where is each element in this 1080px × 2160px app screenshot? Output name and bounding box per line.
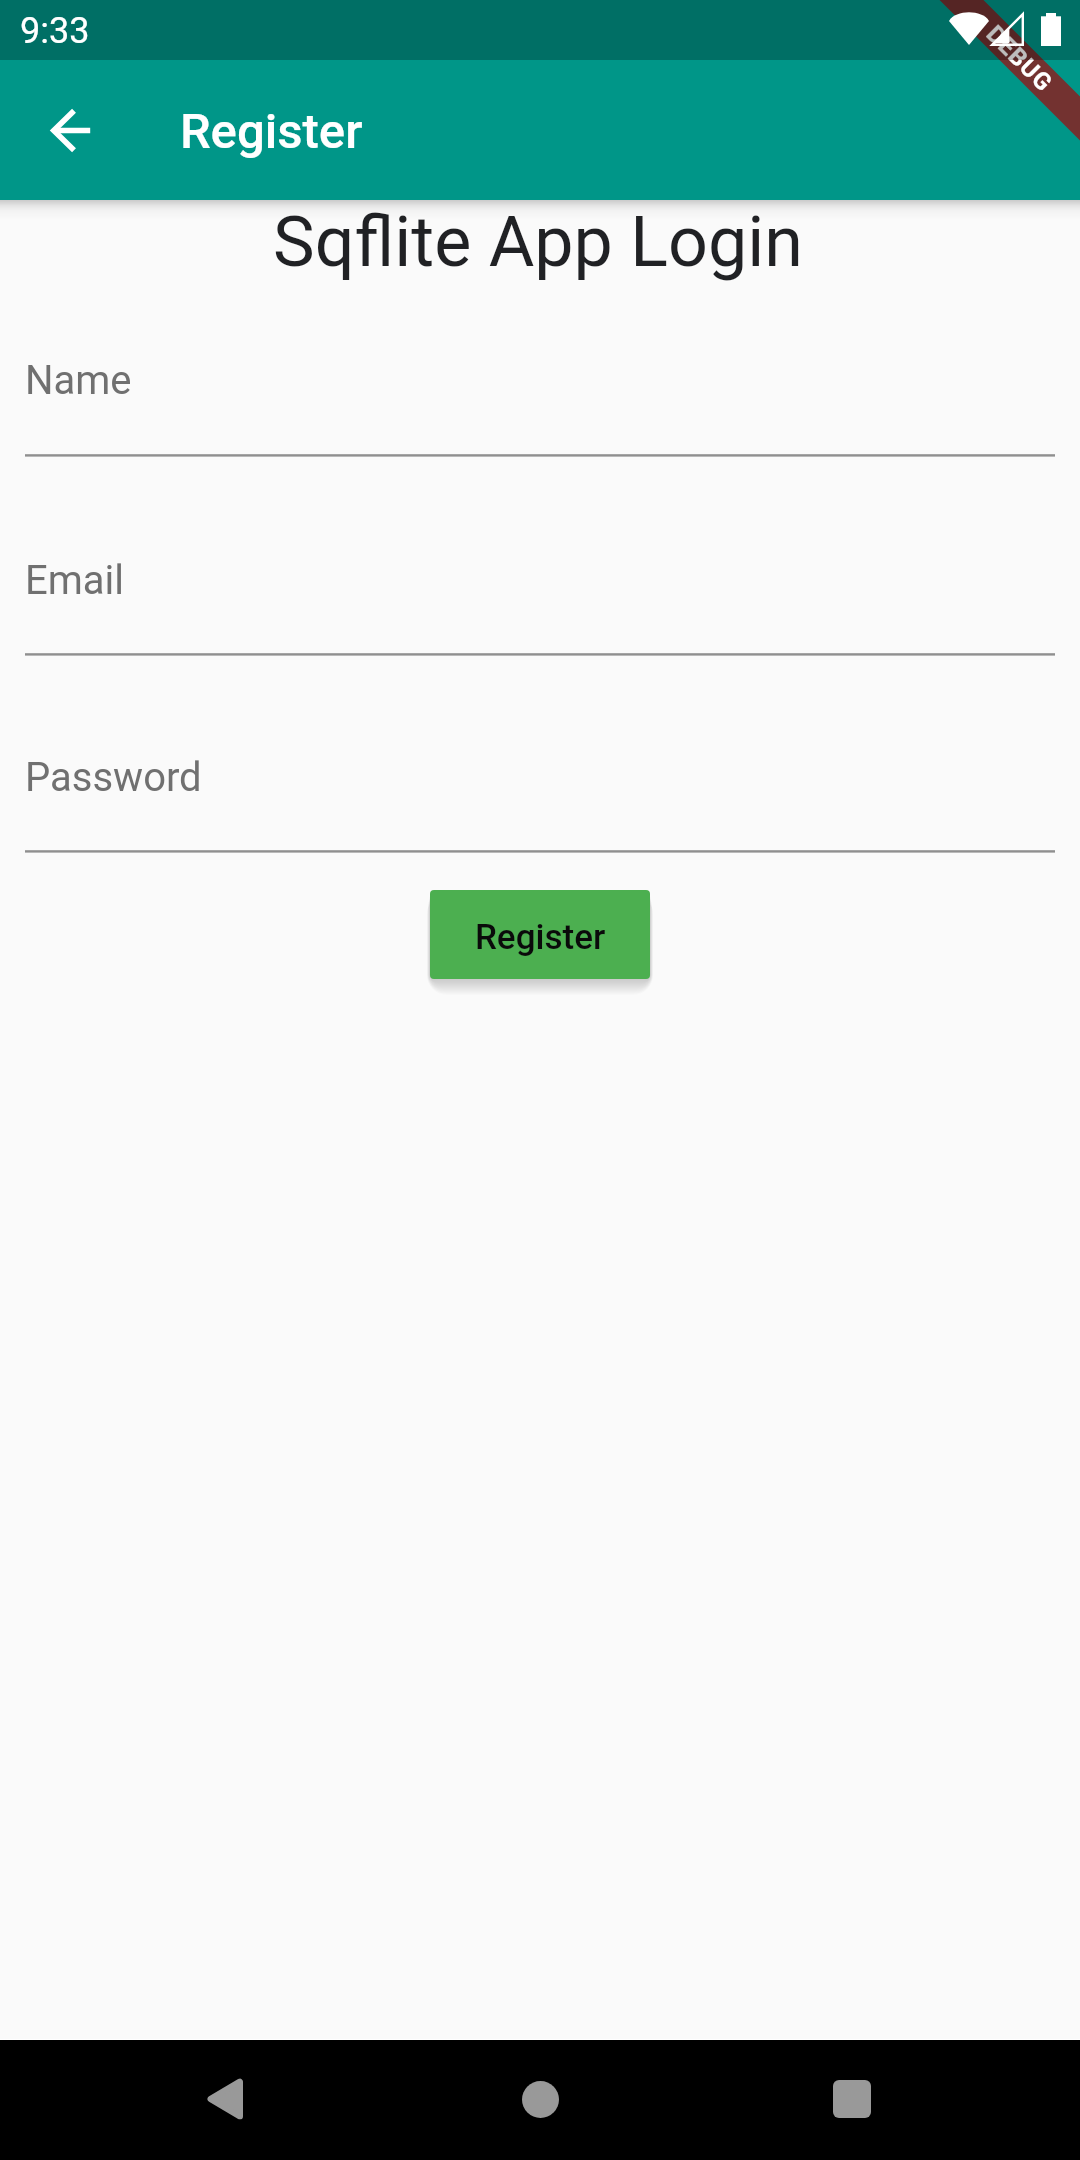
- button[interactable]: Home: [480, 2039, 600, 2159]
- button[interactable]: Register: [430, 890, 650, 979]
- button[interactable]: Recent apps: [792, 2039, 912, 2159]
- button[interactable]: Back: [24, 82, 120, 178]
- staticText: Register: [180, 103, 363, 160]
- staticText: 9:33: [20, 10, 90, 52]
- staticText: Name: [25, 357, 132, 404]
- button[interactable]: Back: [163, 2039, 283, 2159]
- staticText: Password: [25, 754, 202, 801]
- staticText: DEBUG: [981, 20, 1059, 98]
- staticText: Sqflite App Login: [0, 201, 1078, 283]
- staticText: Register: [475, 917, 606, 958]
- staticText: Email: [25, 557, 125, 604]
